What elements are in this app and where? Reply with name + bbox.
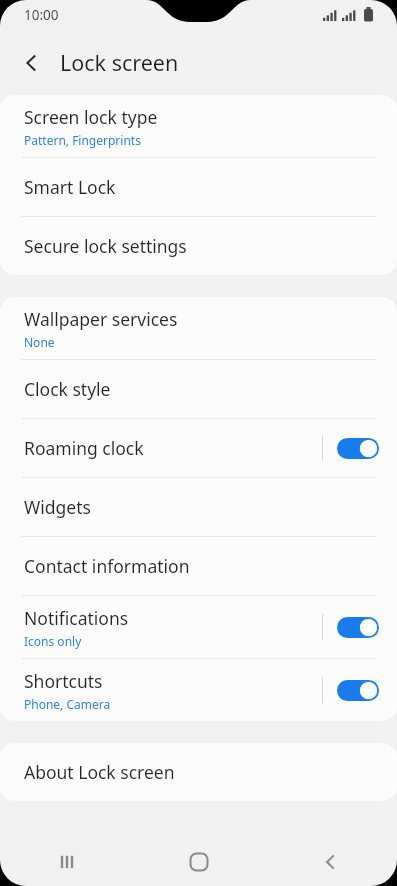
button[interactable]: Toggle Shortcuts (337, 680, 379, 701)
staticText: Pattern, Fingerprints (24, 132, 141, 148)
button[interactable]: Notifications (0, 596, 397, 658)
staticText: Icons only (24, 633, 82, 649)
button[interactable]: Toggle Roaming clock (337, 438, 379, 459)
staticText: Wallpaper services (24, 307, 178, 331)
staticText: Lock screen (60, 48, 179, 77)
staticText: Widgets (24, 495, 91, 519)
button[interactable]: Recents (0, 838, 133, 886)
button[interactable]: Contact information (0, 537, 397, 595)
staticText: Notifications (24, 606, 129, 630)
button[interactable]: Home (133, 838, 265, 886)
staticText: Roaming clock (24, 436, 144, 460)
staticText: Secure lock settings (24, 234, 187, 258)
button[interactable]: Smart Lock (0, 158, 397, 216)
staticText: Phone, Camera (24, 696, 111, 712)
staticText: About Lock screen (24, 760, 175, 784)
staticText: Clock style (24, 377, 111, 401)
button[interactable]: Roaming clock (0, 419, 397, 477)
staticText: Screen lock type (24, 105, 158, 129)
button[interactable]: Clock style (0, 360, 397, 418)
button[interactable]: Back (265, 838, 397, 886)
button[interactable]: Back (14, 45, 50, 81)
staticText: Contact information (24, 554, 190, 578)
staticText: Shortcuts (24, 669, 103, 693)
button[interactable]: Shortcuts (0, 659, 397, 721)
button[interactable]: Secure lock settings (0, 217, 397, 275)
button[interactable]: Wallpaper services (0, 297, 397, 359)
button[interactable]: Toggle Notifications (337, 617, 379, 638)
button[interactable]: Screen lock type (0, 95, 397, 157)
staticText: 10:00 (24, 6, 59, 24)
button[interactable]: Widgets (0, 478, 397, 536)
button[interactable]: About Lock screen (0, 743, 397, 801)
staticText: Smart Lock (24, 175, 116, 199)
staticText: None (24, 334, 55, 350)
